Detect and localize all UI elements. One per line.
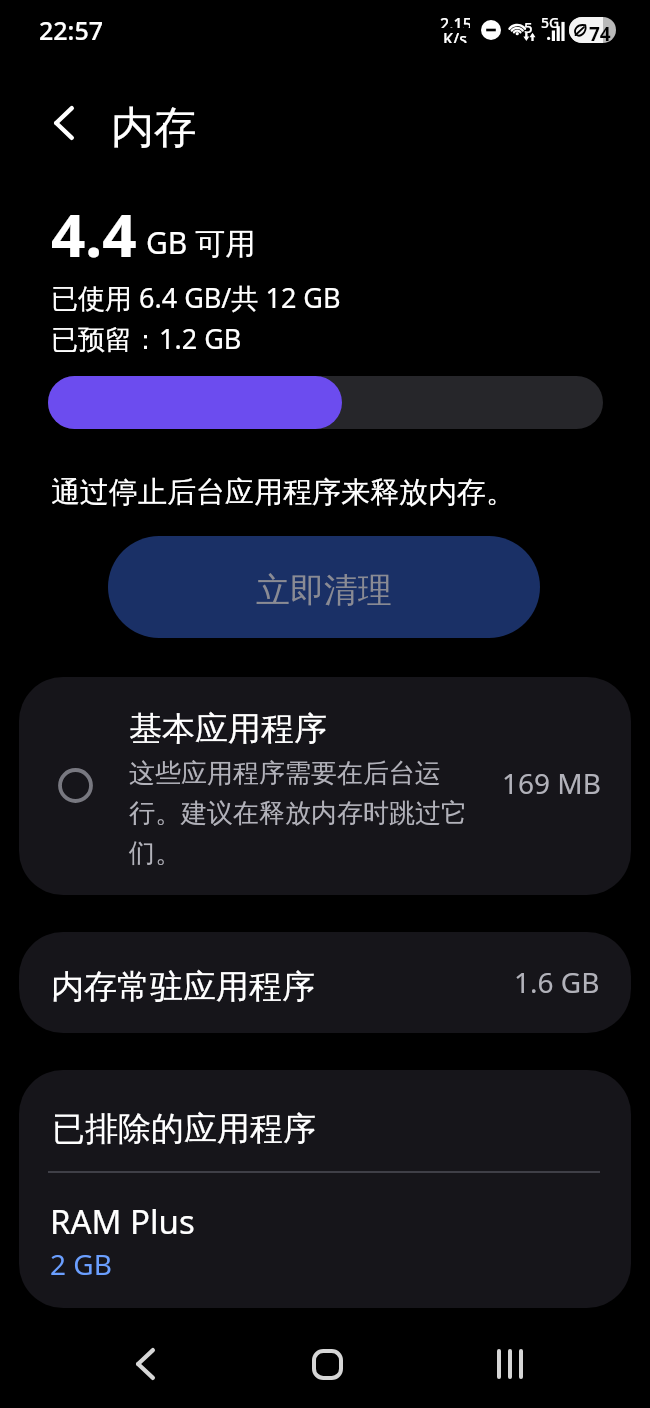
- staticText: 2.15: [440, 13, 470, 28]
- staticText: 5G: [541, 13, 560, 32]
- button[interactable]: 内存常驻应用程序: [19, 932, 631, 1033]
- staticText: 74: [589, 21, 611, 43]
- staticText: 4.4: [51, 193, 137, 275]
- button[interactable]: RAM Plus: [50, 1199, 195, 1283]
- button[interactable]: Home: [297, 1334, 357, 1394]
- button[interactable]: Back: [37, 89, 91, 157]
- staticText: 这些应用程序需要在后台运行。建议在释放内存时跳过它们。: [129, 757, 467, 870]
- staticText: 内存常驻应用程序: [51, 966, 315, 1008]
- staticText: 内存: [111, 101, 197, 155]
- staticText: 通过停止后台应用程序来释放内存。: [51, 474, 515, 511]
- staticText: 已预留：1.2 GB: [51, 320, 242, 357]
- staticText: GB 可用: [146, 222, 256, 263]
- staticText: 基本应用程序: [129, 708, 327, 750]
- staticText: 已排除的应用程序: [52, 1108, 316, 1150]
- button[interactable]: Recent apps: [480, 1334, 540, 1394]
- button[interactable]: Back: [115, 1334, 175, 1394]
- staticText: 5: [524, 17, 533, 37]
- staticText: RAM Plus: [50, 1199, 195, 1244]
- staticText: 1.6 GB: [514, 963, 600, 1001]
- staticText: 立即清理: [256, 569, 392, 612]
- staticText: 2 GB: [50, 1245, 112, 1283]
- staticText: 22:57: [39, 13, 104, 47]
- button[interactable]: 立即清理: [108, 536, 540, 638]
- staticText: K/s: [443, 28, 468, 43]
- staticText: 已使用 6.4 GB/共 12 GB: [51, 279, 341, 316]
- staticText: 169 MB: [502, 764, 601, 802]
- button[interactable]: 基本应用程序: [19, 677, 631, 895]
